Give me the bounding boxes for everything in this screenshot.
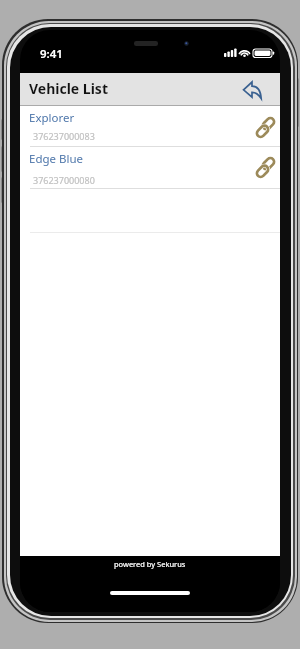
button[interactable]: Explorer <box>20 106 280 146</box>
staticText: Vehicle List <box>29 79 108 98</box>
staticText: powered by Sekurus <box>114 559 186 569</box>
staticText: 9:41 <box>40 46 63 62</box>
button[interactable]: Vehicle List <box>20 73 280 106</box>
button[interactable] <box>242 81 263 100</box>
staticText: 376237000083 <box>33 130 95 142</box>
button[interactable]: Edge Blue <box>20 147 280 188</box>
staticText: 376237000080 <box>33 174 95 186</box>
staticText: Explorer <box>29 110 75 126</box>
staticText: Edge Blue <box>29 151 84 167</box>
